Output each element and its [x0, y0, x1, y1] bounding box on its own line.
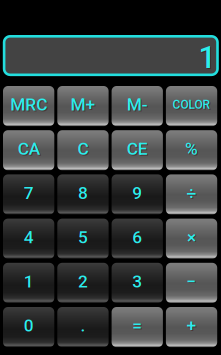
- staticText: ×: [187, 227, 196, 247]
- staticText: 7: [25, 184, 35, 204]
- button[interactable]: 7: [3, 174, 54, 215]
- staticText: 6: [132, 227, 142, 247]
- staticText: 0: [24, 315, 34, 336]
- staticText: 4: [25, 228, 35, 248]
- staticText: .: [80, 315, 85, 336]
- staticText: ÷: [186, 183, 196, 203]
- button[interactable]: 1: [3, 263, 54, 303]
- staticText: 6: [133, 228, 143, 248]
- staticText: 5: [79, 228, 89, 248]
- button[interactable]: CA: [3, 130, 54, 170]
- staticText: −: [186, 271, 196, 292]
- staticText: 1: [198, 40, 215, 75]
- staticText: C: [78, 140, 89, 160]
- staticText: MRC: [11, 95, 48, 116]
- staticText: 8: [79, 184, 89, 204]
- button[interactable]: C: [57, 130, 109, 170]
- staticText: +: [187, 316, 197, 337]
- staticText: MRC: [10, 94, 47, 115]
- staticText: 1: [24, 271, 34, 292]
- button[interactable]: COLOR: [166, 86, 217, 126]
- staticText: 8: [78, 183, 88, 203]
- button[interactable]: =: [112, 307, 163, 347]
- button[interactable]: ×: [166, 219, 217, 259]
- staticText: 1: [25, 272, 35, 292]
- staticText: 5: [78, 227, 88, 247]
- staticText: M-: [127, 94, 148, 115]
- staticText: =: [132, 315, 142, 336]
- staticText: 3: [132, 271, 142, 292]
- button[interactable]: 6: [112, 219, 163, 259]
- button[interactable]: 5: [57, 219, 109, 259]
- staticText: 9: [132, 183, 142, 203]
- staticText: 0: [25, 316, 35, 337]
- staticText: 3: [133, 272, 143, 292]
- staticText: CE: [128, 140, 149, 160]
- button[interactable]: +: [166, 307, 217, 347]
- staticText: −: [187, 272, 197, 292]
- button[interactable]: MRC: [3, 86, 54, 126]
- staticText: =: [133, 316, 143, 337]
- staticText: .: [81, 316, 86, 337]
- staticText: CA: [19, 140, 41, 160]
- button[interactable]: M-: [112, 86, 163, 126]
- staticText: COLOR: [172, 98, 210, 112]
- button[interactable]: 9: [112, 174, 163, 215]
- button[interactable]: 3: [112, 263, 163, 303]
- staticText: M+: [71, 95, 96, 116]
- staticText: M+: [70, 94, 95, 115]
- button[interactable]: 8: [57, 174, 109, 215]
- staticText: +: [186, 315, 196, 336]
- button[interactable]: M+: [57, 86, 109, 126]
- staticText: COLOR: [173, 99, 211, 113]
- button[interactable]: .: [57, 307, 109, 347]
- button[interactable]: CE: [112, 130, 163, 170]
- staticText: ÷: [187, 184, 197, 204]
- button[interactable]: 4: [3, 219, 54, 259]
- button[interactable]: −: [166, 263, 217, 303]
- staticText: 2: [78, 271, 88, 292]
- button[interactable]: 2: [57, 263, 109, 303]
- staticText: %: [186, 140, 199, 160]
- staticText: CA: [18, 139, 40, 159]
- staticText: %: [185, 139, 198, 159]
- staticText: 9: [133, 184, 143, 204]
- staticText: 4: [24, 227, 34, 247]
- button[interactable]: ÷: [166, 174, 217, 215]
- staticText: CE: [127, 139, 148, 159]
- staticText: ×: [188, 228, 197, 248]
- staticText: 2: [79, 272, 89, 292]
- staticText: 1: [199, 40, 216, 76]
- staticText: 7: [24, 183, 34, 203]
- button[interactable]: %: [166, 130, 217, 170]
- staticText: M-: [128, 95, 149, 116]
- staticText: C: [77, 139, 88, 159]
- button[interactable]: 0: [3, 307, 54, 347]
